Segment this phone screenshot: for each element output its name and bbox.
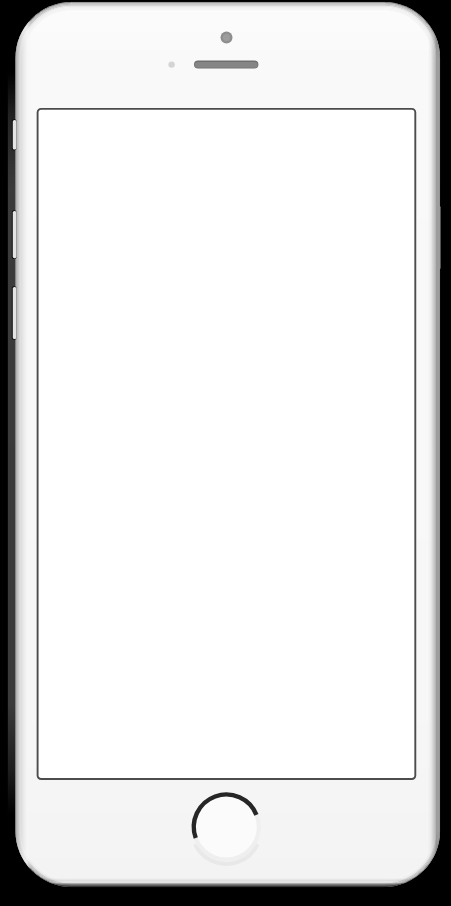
other: Phone mockup: [0, 0, 451, 906]
